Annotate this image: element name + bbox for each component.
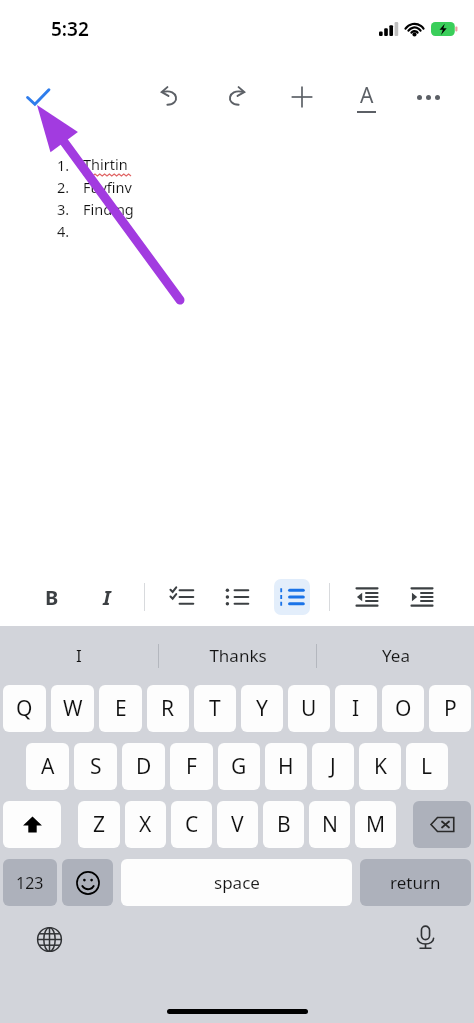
button[interactable]: Italic (89, 579, 125, 615)
staticText: Finding (83, 199, 134, 219)
button[interactable]: Y (241, 685, 283, 732)
staticText: R (161, 694, 175, 723)
staticText: 5:32 (51, 16, 89, 42)
staticText: X (139, 810, 152, 839)
staticText: J (330, 752, 336, 781)
staticText: O (395, 694, 412, 723)
staticText: B (277, 810, 291, 839)
button[interactable]: Done (16, 75, 60, 119)
staticText: A (360, 81, 374, 110)
staticText: Fuvfinv (83, 177, 132, 197)
button[interactable]: Bulleted list (219, 579, 255, 615)
staticText: M (366, 810, 386, 839)
button[interactable]: Thanks (159, 626, 316, 685)
staticText: I (103, 584, 111, 611)
staticText: return (390, 871, 441, 894)
button[interactable]: Decrease indent (349, 579, 385, 615)
button[interactable]: W (51, 685, 94, 732)
staticText: K (374, 752, 387, 781)
button[interactable]: Text format (344, 75, 388, 119)
staticText: V (231, 810, 244, 839)
staticText: 4. (57, 221, 70, 241)
staticText: Yea (382, 644, 410, 667)
button[interactable]: A (26, 743, 69, 790)
button[interactable]: Checklist (164, 579, 200, 615)
button[interactable]: Q (3, 685, 46, 732)
staticText: U (301, 694, 317, 723)
button[interactable]: Dictation (408, 920, 442, 954)
staticText: Thanks (209, 644, 267, 667)
staticText: G (231, 752, 247, 781)
button[interactable]: Yea (317, 626, 474, 685)
button[interactable]: P (429, 685, 471, 732)
button[interactable]: B (263, 801, 304, 848)
button[interactable]: Z (78, 801, 120, 848)
button[interactable]: Change keyboard (32, 922, 66, 956)
button[interactable]: Redo (216, 77, 256, 117)
button[interactable]: I (0, 626, 158, 685)
button[interactable]: Insert (282, 77, 322, 117)
staticText: A (41, 752, 55, 781)
staticText: Q (16, 694, 33, 723)
staticText: 3. (57, 199, 70, 219)
button[interactable]: D (122, 743, 165, 790)
button[interactable]: X (125, 801, 166, 848)
button[interactable]: space (121, 859, 352, 906)
button[interactable]: G (218, 743, 260, 790)
staticText: W (63, 694, 83, 723)
staticText: I (76, 644, 82, 667)
button[interactable]: Shift (3, 801, 61, 848)
button[interactable]: F (170, 743, 213, 790)
button[interactable]: V (217, 801, 258, 848)
button[interactable]: C (171, 801, 212, 848)
button[interactable]: 123 (3, 859, 57, 906)
staticText: B (45, 584, 59, 611)
button[interactable]: E (99, 685, 142, 732)
button[interactable]: Backspace (413, 801, 471, 848)
button[interactable]: I (335, 685, 377, 732)
button[interactable]: H (265, 743, 307, 790)
staticText: H (278, 752, 294, 781)
button[interactable]: O (382, 685, 424, 732)
staticText: D (136, 752, 152, 781)
staticText: I (352, 694, 360, 723)
button[interactable]: U (288, 685, 330, 732)
button[interactable]: L (406, 743, 448, 790)
staticText: Y (256, 694, 268, 723)
button[interactable]: Emoji (62, 859, 113, 906)
staticText: Thirtin (83, 154, 128, 174)
staticText: Z (93, 810, 106, 839)
staticText: 123 (16, 872, 44, 894)
button[interactable]: return (360, 859, 471, 906)
staticText: T (209, 694, 221, 723)
button[interactable]: More options (406, 75, 450, 119)
staticText: F (186, 752, 197, 781)
button[interactable]: J (312, 743, 354, 790)
button[interactable]: N (309, 801, 350, 848)
button[interactable]: Numbered list (274, 579, 310, 615)
staticText: S (90, 752, 102, 781)
button[interactable]: K (359, 743, 401, 790)
button[interactable]: M (355, 801, 396, 848)
staticText: space (214, 871, 260, 894)
button[interactable]: R (147, 685, 189, 732)
staticText: N (322, 810, 338, 839)
button[interactable]: Bold (34, 579, 70, 615)
staticText: E (115, 694, 127, 723)
button[interactable]: S (74, 743, 117, 790)
staticText: 2. (57, 177, 70, 197)
staticText: C (185, 810, 199, 839)
button[interactable]: Increase indent (404, 579, 440, 615)
button[interactable]: Undo (150, 77, 190, 117)
staticText: L (421, 752, 433, 781)
staticText: P (444, 694, 457, 723)
button[interactable]: T (194, 685, 236, 732)
staticText: 1. (57, 155, 70, 175)
